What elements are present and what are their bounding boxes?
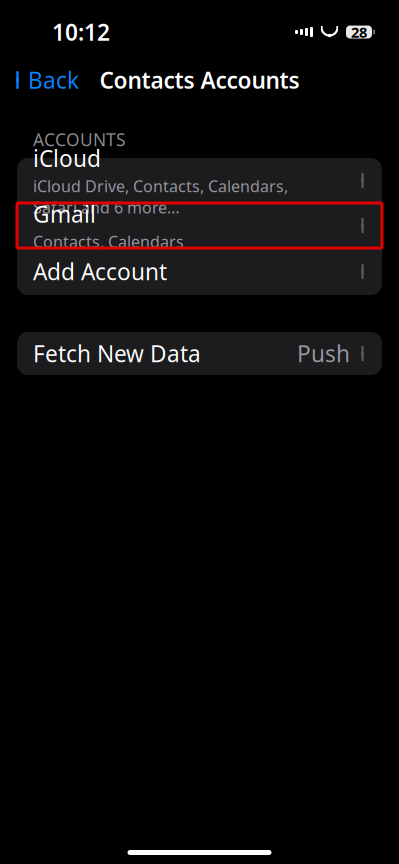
staticText: Back <box>28 65 79 95</box>
staticText: iCloud Drive, Contacts, Calendars, Safar… <box>33 175 288 218</box>
staticText: 28 <box>351 22 367 42</box>
staticText: Add Account <box>33 256 167 287</box>
staticText: Contacts Accounts <box>99 65 299 95</box>
button[interactable]: Back <box>0 59 89 101</box>
staticText: Fetch New Data <box>33 338 201 369</box>
button[interactable]: iCloud <box>17 158 382 203</box>
staticText: iCloud <box>33 143 101 173</box>
button[interactable]: Add Account <box>17 248 382 295</box>
staticText: ACCOUNTS <box>33 128 126 151</box>
staticText: Push <box>297 338 350 369</box>
button[interactable]: Gmail <box>17 203 382 248</box>
button[interactable]: Fetch New Data <box>0 332 399 375</box>
staticText: Contacts, Calendars <box>33 231 184 252</box>
staticText: 10:12 <box>52 17 110 47</box>
staticText: Gmail <box>33 199 96 229</box>
